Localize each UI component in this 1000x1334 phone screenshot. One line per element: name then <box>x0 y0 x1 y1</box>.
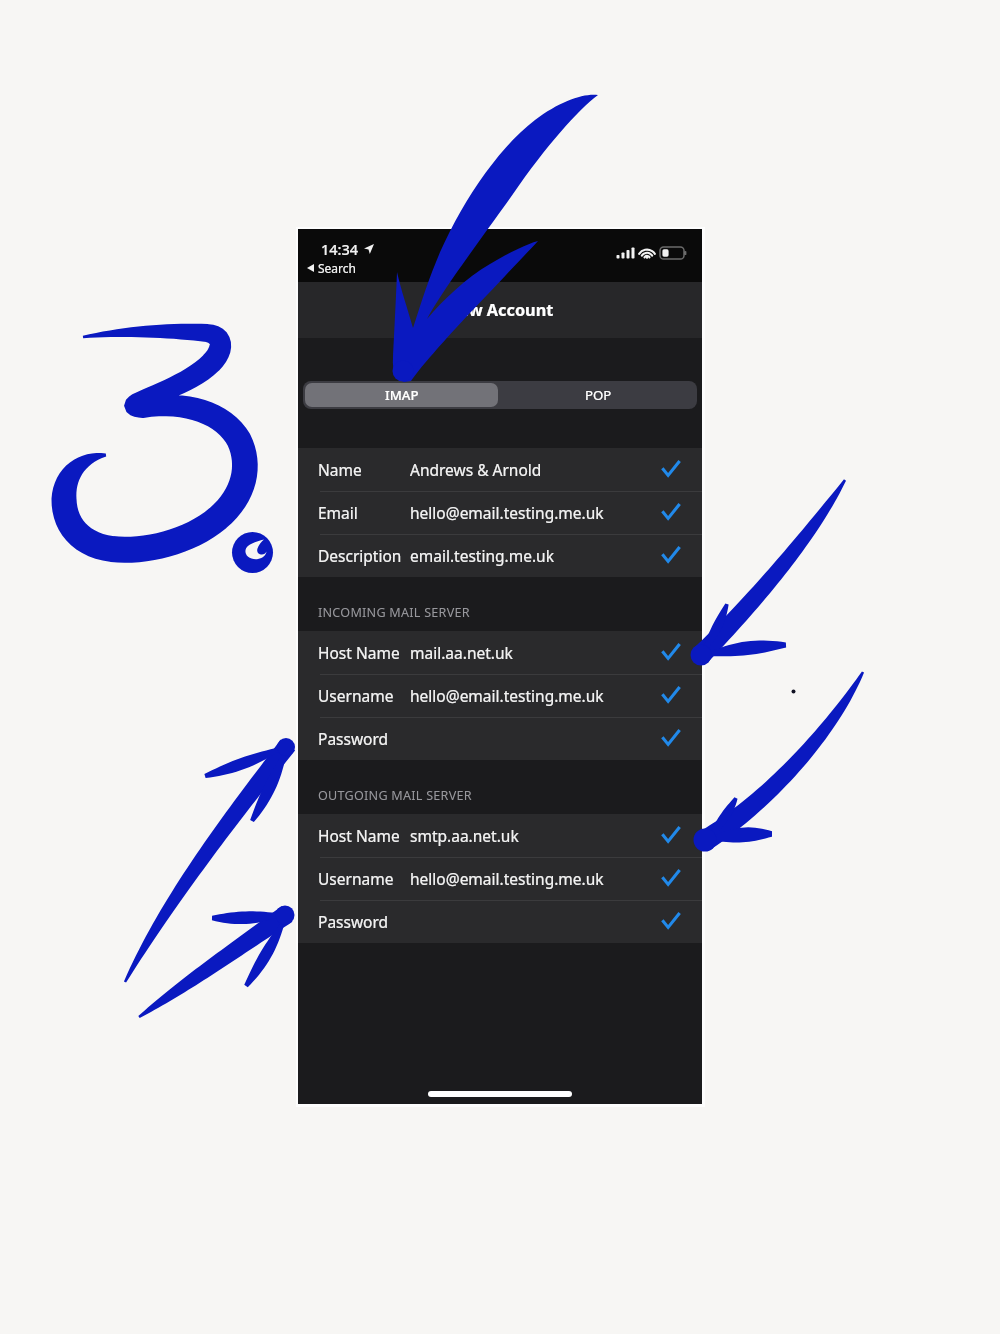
button[interactable]: POP <box>500 381 697 409</box>
staticText: Password <box>318 728 389 749</box>
staticText: hello@email.testing.me.uk <box>410 685 604 706</box>
button[interactable]: Password <box>298 717 702 760</box>
staticText: hello@email.testing.me.uk <box>410 502 604 523</box>
staticText: New Account <box>446 299 554 321</box>
button[interactable]: Email <box>298 491 702 534</box>
staticText: Search <box>318 260 356 276</box>
button[interactable]: Host Name <box>298 814 702 857</box>
button[interactable]: New Account <box>298 282 702 338</box>
staticText: smtp.aa.net.uk <box>410 825 519 846</box>
staticText: INCOMING MAIL SERVER <box>318 604 470 621</box>
staticText: POP <box>585 386 612 404</box>
staticText: Name <box>318 459 362 480</box>
button[interactable]: Signal, Wi-Fi and battery status <box>616 246 686 260</box>
staticText: Password <box>318 911 389 932</box>
staticText: Host Name <box>318 825 400 846</box>
staticText: Andrews & Arnold <box>410 459 542 480</box>
button[interactable]: Username <box>298 857 702 900</box>
staticText: Username <box>318 868 394 889</box>
button[interactable]: Host Name <box>298 631 702 674</box>
staticText: Email <box>318 502 358 523</box>
button[interactable]: Name <box>298 448 702 491</box>
button[interactable]: Username <box>298 674 702 717</box>
staticText: OUTGOING MAIL SERVER <box>318 787 472 804</box>
staticText: 14:34 <box>321 239 359 259</box>
staticText: mail.aa.net.uk <box>410 642 513 663</box>
staticText: email.testing.me.uk <box>410 545 554 566</box>
staticText: IMAP <box>385 386 419 404</box>
button[interactable]: Password <box>298 900 702 943</box>
staticText: hello@email.testing.me.uk <box>410 868 604 889</box>
staticText: Host Name <box>318 642 400 663</box>
button[interactable]: Search <box>307 260 356 276</box>
button[interactable]: Description <box>298 534 702 577</box>
staticText: Description <box>318 545 402 566</box>
staticText: Username <box>318 685 394 706</box>
button[interactable]: IMAP <box>305 383 498 407</box>
